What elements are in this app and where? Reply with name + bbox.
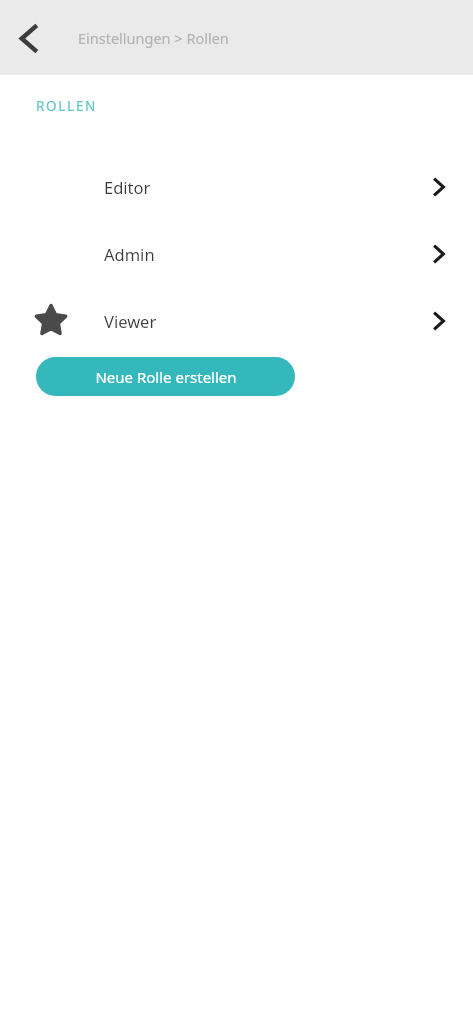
other: Öffnen: Viewer: [424, 307, 452, 335]
staticText: Admin: [104, 243, 155, 265]
staticText: Viewer: [104, 310, 157, 332]
other: Öffnen: Admin: [424, 240, 452, 268]
staticText: Einstellungen > Rollen: [78, 28, 229, 48]
button[interactable]: Admin: [0, 230, 473, 278]
staticText: Neue Rolle erstellen: [95, 367, 237, 387]
button[interactable]: Editor: [0, 163, 473, 211]
other: Öffnen: Editor: [424, 173, 452, 201]
button[interactable]: Favorit: [0, 297, 473, 345]
other: Favorit: [34, 304, 68, 338]
staticText: Editor: [104, 176, 151, 198]
button[interactable]: Neue Rolle erstellen: [36, 357, 295, 396]
staticText: ROLLEN: [36, 97, 98, 115]
button[interactable]: Zurück: [6, 15, 52, 61]
